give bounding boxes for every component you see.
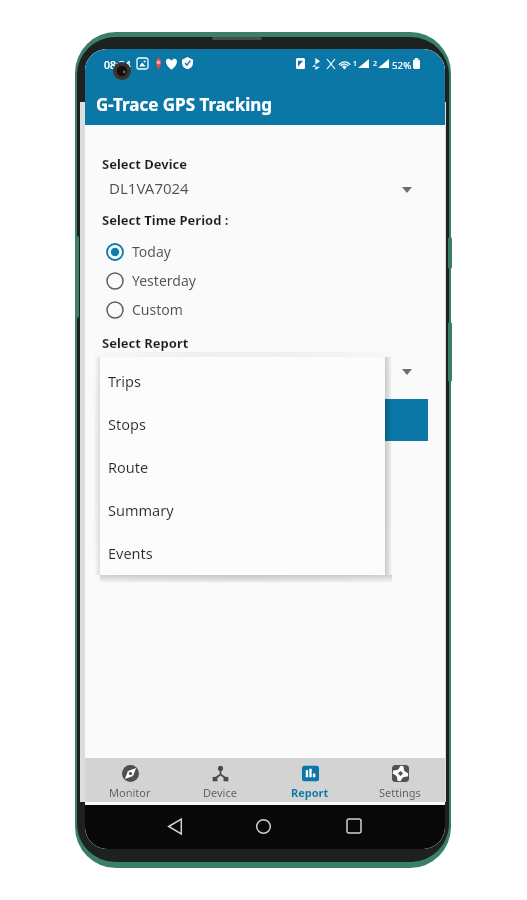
button[interactable]: DL1VA7024: [85, 173, 445, 203]
button[interactable]: Trips: [100, 359, 385, 402]
button[interactable]: [85, 355, 445, 385]
staticText: Select Time Period :: [102, 211, 229, 229]
button[interactable]: Monitor: [85, 758, 175, 802]
button[interactable]: Device: [175, 758, 265, 802]
button[interactable]: Events: [100, 531, 385, 574]
button[interactable]: Stops: [100, 402, 385, 445]
staticText: Report: [291, 785, 329, 800]
staticText: Today: [132, 242, 171, 261]
button[interactable]: Route: [100, 445, 385, 488]
staticText: 52%: [392, 59, 412, 72]
staticText: Settings: [379, 785, 421, 800]
button[interactable]: Settings: [355, 758, 445, 802]
staticText: Stops: [108, 414, 146, 434]
button[interactable]: Yesterday: [85, 266, 445, 295]
button[interactable]: Back: [159, 810, 191, 842]
staticText: Select Report: [102, 334, 189, 352]
button[interactable]: Summary: [100, 488, 385, 531]
button[interactable]: Home: [247, 810, 279, 842]
button[interactable]: [370, 399, 428, 441]
staticText: 1: [353, 59, 358, 69]
staticText: G-Trace GPS Tracking: [96, 93, 273, 116]
staticText: DL1VA7024: [109, 178, 189, 198]
button[interactable]: Recents: [338, 810, 370, 842]
button[interactable]: Today: [85, 237, 445, 266]
staticText: Events: [108, 543, 153, 563]
staticText: Route: [108, 457, 149, 477]
staticText: Summary: [108, 500, 174, 520]
staticText: 2: [373, 59, 378, 69]
staticText: Monitor: [109, 785, 151, 800]
staticText: Custom: [132, 300, 183, 319]
staticText: Yesterday: [132, 271, 196, 290]
staticText: 08:34: [104, 58, 131, 72]
staticText: Select Device: [102, 155, 188, 173]
button[interactable]: Report: [265, 758, 355, 802]
staticText: Trips: [108, 371, 141, 391]
staticText: Device: [203, 785, 237, 800]
button[interactable]: Custom: [85, 295, 445, 324]
